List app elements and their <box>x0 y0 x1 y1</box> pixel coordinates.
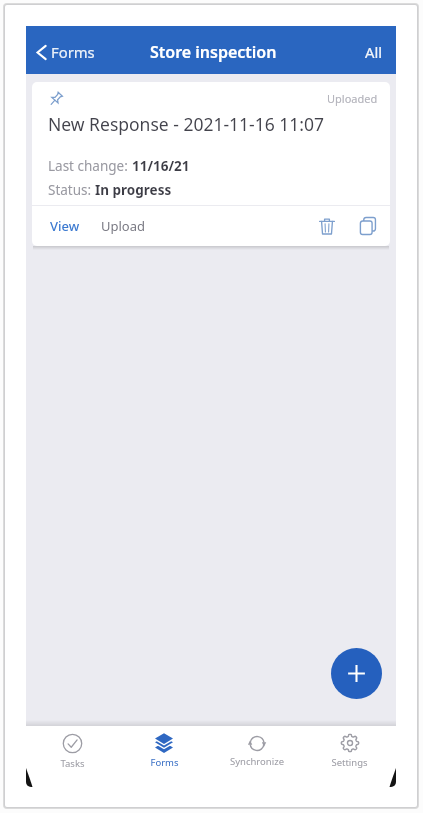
button[interactable]: All <box>351 32 396 72</box>
staticText: Status: <box>48 181 95 199</box>
button[interactable]: Tasks <box>26 730 118 784</box>
staticText: All <box>365 42 383 62</box>
staticText: Forms <box>51 42 95 62</box>
staticText: New Response - 2021-11-16 11:07 <box>48 112 325 136</box>
staticText: Upload <box>101 217 146 235</box>
button[interactable]: Duplicate <box>352 209 384 243</box>
button[interactable]: Uploaded <box>32 82 390 246</box>
button[interactable]: Forms <box>26 36 105 68</box>
staticText: Forms <box>150 756 179 769</box>
button[interactable]: Synchronize <box>210 732 303 782</box>
staticText: Uploaded <box>327 91 378 106</box>
button[interactable]: Delete <box>311 210 343 243</box>
staticText: Tasks <box>60 757 85 770</box>
button[interactable]: Settings <box>303 730 396 783</box>
staticText: Synchronize <box>230 755 284 768</box>
button[interactable]: Upload <box>93 208 154 244</box>
staticText: 11/16/21 <box>132 157 190 175</box>
button[interactable]: Add <box>331 648 382 699</box>
staticText: Store inspection <box>150 41 277 63</box>
staticText: In progress <box>95 181 172 199</box>
button[interactable]: Forms <box>118 730 210 783</box>
staticText: Settings <box>331 756 368 769</box>
staticText: Last change: <box>48 157 132 175</box>
staticText: View <box>50 217 80 235</box>
button[interactable]: View <box>42 208 88 244</box>
